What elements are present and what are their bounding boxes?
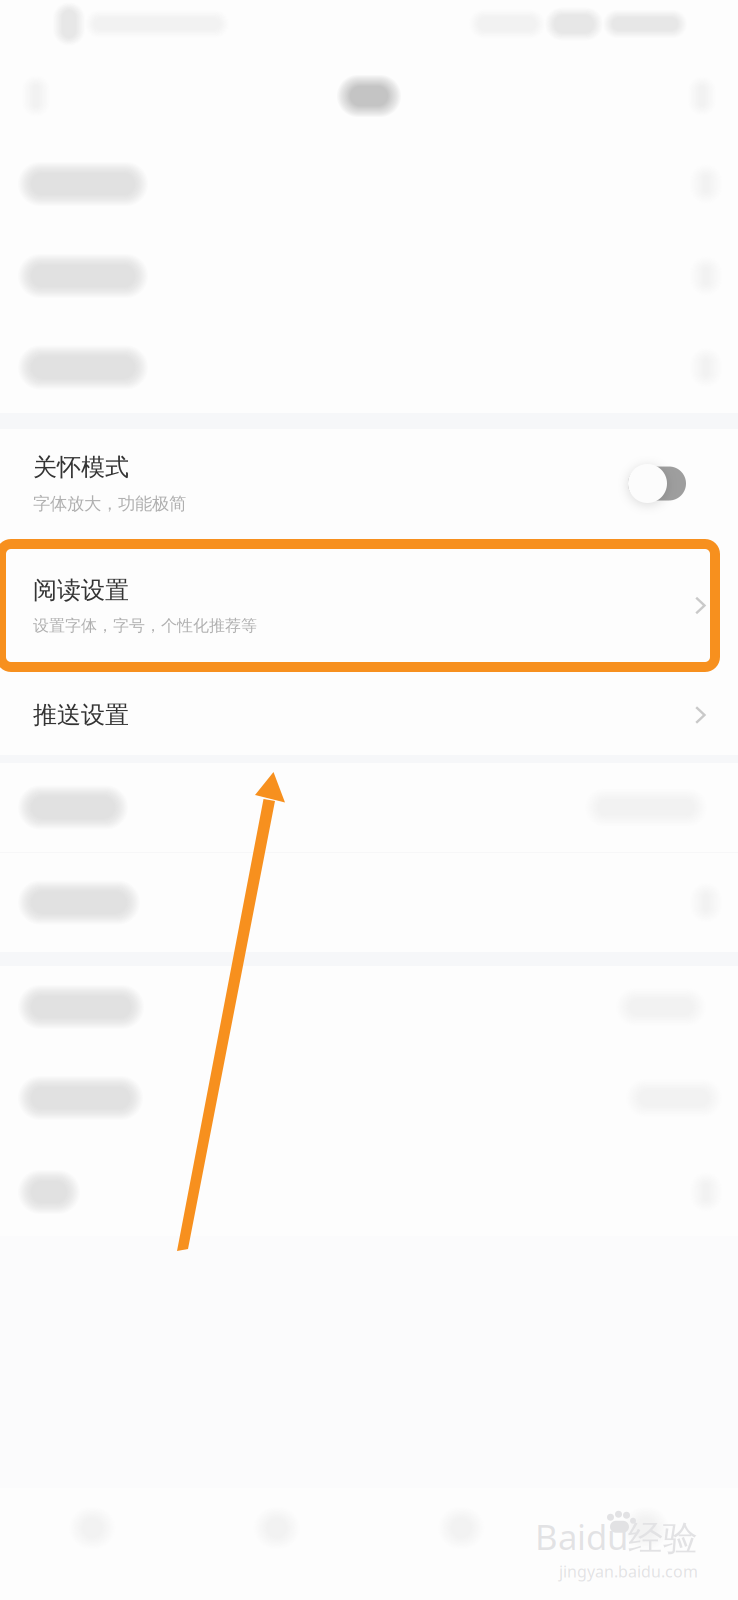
button[interactable]: 设置项 [0, 1148, 738, 1236]
staticText: 推送设置 [33, 700, 129, 730]
button[interactable]: 设置项 [0, 230, 738, 322]
button[interactable]: 设置项 [0, 966, 738, 1048]
button[interactable]: 设置项 [0, 322, 738, 413]
button[interactable]: 推送设置 [0, 667, 738, 755]
staticText: 阅读设置 [33, 575, 129, 605]
button[interactable]: 阅读设置 [0, 544, 738, 667]
button[interactable]: 标签 [369, 1488, 553, 1600]
staticText: 设置字体，字号，个性化推荐等 [33, 616, 257, 636]
button[interactable]: 设置项 [0, 1048, 738, 1148]
button[interactable]: 标签 [553, 1488, 738, 1600]
staticText: 字体放大，功能极简 [33, 493, 186, 514]
staticText: Baidu经验 [535, 1513, 698, 1560]
staticText: 关怀模式 [33, 453, 129, 482]
button[interactable]: 设置项 [0, 138, 738, 230]
button[interactable]: 设置项 [0, 763, 738, 852]
button[interactable]: 设置项 [0, 853, 738, 952]
button[interactable]: 关怀模式 [628, 467, 686, 506]
staticText: jingyan.baidu.com [559, 1561, 698, 1582]
